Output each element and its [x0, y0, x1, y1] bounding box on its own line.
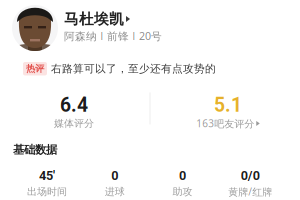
staticText: 出场时间	[27, 185, 67, 198]
button[interactable]: 热评	[0, 62, 300, 75]
staticText: 马杜埃凯	[64, 10, 124, 28]
staticText: 0/0	[241, 168, 260, 183]
staticText: 6.4	[60, 94, 88, 116]
staticText: 助攻	[172, 185, 192, 198]
staticText: 右路算可以了，至少还有点攻势的	[51, 62, 216, 75]
button[interactable]: 5.1	[150, 94, 300, 128]
staticText: 5.1	[214, 94, 242, 116]
staticText: 163吧友评分	[196, 117, 254, 130]
staticText: 45'	[39, 168, 55, 183]
staticText: 媒体评分	[54, 117, 94, 130]
staticText: 黄牌/红牌	[228, 185, 272, 198]
staticText: 进球	[105, 185, 125, 198]
staticText: 0	[111, 168, 118, 183]
staticText: 0	[179, 168, 186, 183]
staticText: 热评	[26, 63, 44, 74]
staticText: 基础数据	[13, 142, 57, 157]
button[interactable]: 马杜埃凯	[0, 0, 300, 51]
staticText: 阿森纳 ǀ 前锋 ǀ 20号	[64, 29, 162, 43]
